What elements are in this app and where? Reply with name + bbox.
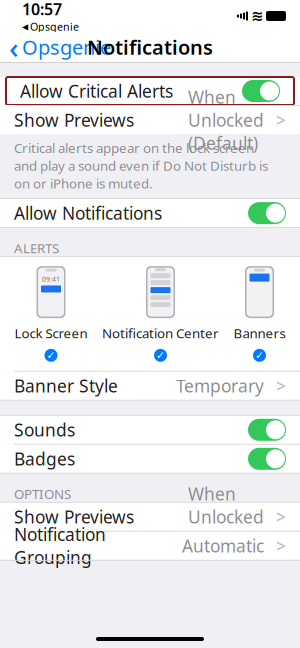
button[interactable]: Sounds: [0, 416, 300, 444]
button[interactable]: Allow Notifications: [0, 199, 300, 227]
staticText: Allow Critical Alerts: [20, 79, 173, 102]
staticText: [264, 105, 276, 135]
staticText: ≋: [251, 8, 263, 24]
button[interactable]: 09:41: [14, 266, 87, 362]
staticText: Opsgenie: [30, 19, 79, 34]
button[interactable]: Notification Grouping: [0, 532, 300, 560]
staticText: Opsgenie: [22, 34, 111, 60]
staticText: OPTIONS: [14, 485, 71, 503]
button[interactable]: Badges: [0, 445, 300, 473]
staticText: Critical alerts appear on the lock scree…: [14, 139, 268, 192]
staticText: Automatic: [182, 534, 264, 557]
button[interactable]: Notification Center: [102, 266, 219, 362]
staticText: ✓: [46, 349, 55, 361]
staticText: Notifications: [87, 34, 213, 60]
staticText: [264, 502, 276, 532]
staticText: Notification Grouping: [14, 523, 106, 569]
staticText: Banners: [233, 324, 285, 342]
staticText: Show Previews: [14, 505, 134, 528]
button[interactable]: Banners: [233, 266, 285, 362]
staticText: ◀: [22, 22, 28, 31]
staticText: 10:57: [22, 0, 62, 19]
staticText: ‹: [9, 27, 19, 66]
staticText: Notification Center: [102, 324, 219, 342]
button[interactable]: Show Previews: [0, 106, 300, 134]
staticText: >: [276, 374, 286, 397]
staticText: ✓: [156, 349, 165, 361]
staticText: When Unlocked (Default): [188, 85, 264, 155]
staticText: Banner Style: [14, 374, 118, 397]
staticText: 09:41: [42, 275, 60, 283]
staticText: Temporary: [176, 374, 264, 397]
staticText: Allow Notifications: [14, 202, 162, 225]
staticText: Lock Screen: [14, 324, 87, 342]
button[interactable]: Allow Critical Alerts: [6, 77, 294, 105]
staticText: >: [276, 505, 286, 528]
staticText: [264, 531, 276, 561]
staticText: Sounds: [14, 418, 75, 441]
staticText: >: [276, 108, 286, 131]
button[interactable]: Banner Style: [0, 372, 300, 400]
staticText: ✓: [255, 349, 264, 361]
staticText: Show Previews: [14, 108, 134, 131]
staticText: [264, 371, 276, 401]
staticText: >: [276, 534, 286, 557]
staticText: When Unlocked (Default): [188, 482, 264, 551]
staticText: ALERTS: [14, 239, 59, 257]
button[interactable]: ‹: [0, 23, 111, 70]
staticText: Badges: [14, 447, 75, 470]
button[interactable]: Show Previews: [0, 503, 300, 531]
